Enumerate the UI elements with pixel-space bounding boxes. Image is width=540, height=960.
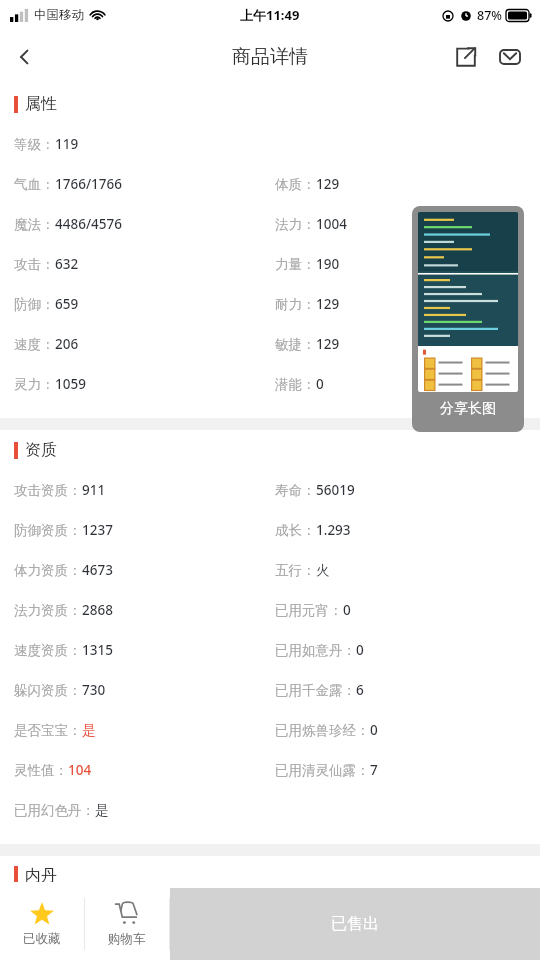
staticText: 内丹 bbox=[25, 866, 57, 882]
staticText: 火 bbox=[316, 562, 330, 579]
staticText: 104 bbox=[68, 761, 92, 779]
staticText: 商品详情 bbox=[232, 45, 308, 69]
staticText: 速度： bbox=[14, 336, 55, 353]
staticText: 已用炼兽珍经： bbox=[275, 722, 370, 739]
staticText: 已售出 bbox=[331, 914, 379, 934]
staticText: 1059 bbox=[55, 375, 86, 393]
staticText: 1004 bbox=[316, 215, 347, 233]
staticText: 上午11:49 bbox=[240, 6, 300, 24]
staticText: 寿命： bbox=[275, 482, 316, 499]
staticText: 灵力： bbox=[14, 376, 55, 393]
staticText: 119 bbox=[55, 135, 79, 153]
staticText: 129 bbox=[316, 175, 340, 193]
staticText: 659 bbox=[55, 295, 79, 313]
staticText: 躲闪资质： bbox=[14, 682, 82, 699]
staticText: 中国移动 bbox=[34, 7, 84, 23]
staticText: 730 bbox=[82, 681, 106, 699]
staticText: 敏捷： bbox=[275, 336, 316, 353]
staticText: 防御资质： bbox=[14, 522, 82, 539]
staticText: 成长： bbox=[275, 522, 316, 539]
staticText: 购物车 bbox=[108, 931, 146, 947]
staticText: 129 bbox=[316, 335, 340, 353]
staticText: 潜能： bbox=[275, 376, 316, 393]
staticText: 魔法： bbox=[14, 216, 55, 233]
staticText: 分享长图 bbox=[440, 400, 496, 418]
button[interactable]: 已收藏 bbox=[0, 888, 84, 960]
staticText: 0 bbox=[370, 721, 378, 739]
staticText: 1237 bbox=[82, 521, 113, 539]
staticText: 0 bbox=[343, 601, 351, 619]
staticText: 4673 bbox=[82, 561, 113, 579]
button[interactable]: 分享长图 bbox=[412, 206, 524, 432]
staticText: 资质 bbox=[25, 440, 57, 460]
staticText: 防御： bbox=[14, 296, 55, 313]
staticText: 是 bbox=[95, 802, 109, 819]
staticText: 已收藏 bbox=[23, 931, 61, 947]
staticText: 攻击资质： bbox=[14, 482, 82, 499]
staticText: 攻击： bbox=[14, 256, 55, 273]
staticText: 911 bbox=[82, 481, 106, 499]
button[interactable]: Share bbox=[444, 35, 488, 79]
staticText: 耐力： bbox=[275, 296, 316, 313]
staticText: 速度资质： bbox=[14, 642, 82, 659]
staticText: 1.293 bbox=[316, 521, 351, 539]
staticText: 等级： bbox=[14, 136, 55, 153]
staticText: 已用幻色丹： bbox=[14, 802, 95, 819]
staticText: 1766/1766 bbox=[55, 175, 122, 193]
staticText: 87% bbox=[477, 7, 502, 24]
staticText: 632 bbox=[55, 255, 79, 273]
staticText: 0 bbox=[356, 641, 364, 659]
button[interactable]: Back bbox=[0, 32, 50, 82]
button[interactable]: Messages bbox=[488, 35, 532, 79]
staticText: 129 bbox=[316, 295, 340, 313]
staticText: 体质： bbox=[275, 176, 316, 193]
staticText: 190 bbox=[316, 255, 340, 273]
staticText: 灵性值： bbox=[14, 762, 68, 779]
staticText: 体力资质： bbox=[14, 562, 82, 579]
staticText: 2868 bbox=[82, 601, 113, 619]
staticText: 56019 bbox=[316, 481, 355, 499]
staticText: 是否宝宝： bbox=[14, 722, 82, 739]
staticText: 五行： bbox=[275, 562, 316, 579]
staticText: 已用元宵： bbox=[275, 602, 343, 619]
staticText: 4486/4576 bbox=[55, 215, 122, 233]
staticText: 法力资质： bbox=[14, 602, 82, 619]
staticText: 已用如意丹： bbox=[275, 642, 356, 659]
staticText: 气血： bbox=[14, 176, 55, 193]
staticText: 1315 bbox=[82, 641, 113, 659]
staticText: 6 bbox=[356, 681, 364, 699]
button[interactable]: 购物车 bbox=[85, 888, 169, 960]
staticText: 0 bbox=[316, 375, 324, 393]
staticText: 是 bbox=[82, 722, 96, 739]
staticText: 法力： bbox=[275, 216, 316, 233]
staticText: 206 bbox=[55, 335, 79, 353]
staticText: 已用清灵仙露： bbox=[275, 762, 370, 779]
staticText: 已用千金露： bbox=[275, 682, 356, 699]
button[interactable]: 已售出 bbox=[170, 888, 540, 960]
staticText: 属性 bbox=[25, 94, 57, 114]
staticText: 7 bbox=[370, 761, 378, 779]
staticText: 力量： bbox=[275, 256, 316, 273]
